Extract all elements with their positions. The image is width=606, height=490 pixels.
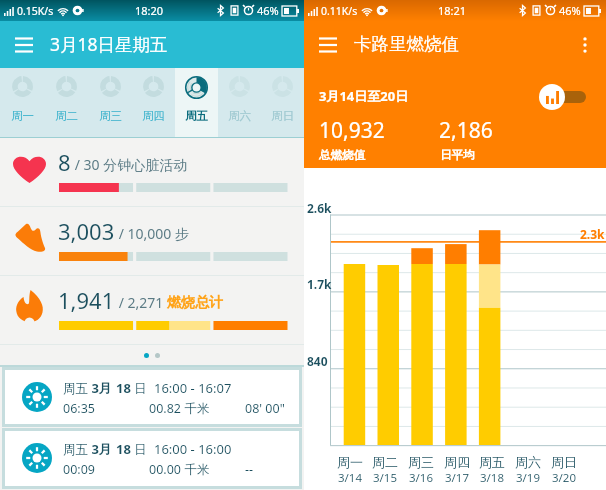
- staticText: 周一: [11, 109, 34, 123]
- staticText: --: [245, 461, 254, 478]
- staticText: 日平均: [440, 148, 475, 162]
- staticText: 46%: [257, 3, 279, 18]
- staticText: 16:00 - 16:00: [154, 440, 232, 458]
- staticText: 2,186: [439, 116, 493, 145]
- staticText: 周五: [185, 109, 208, 123]
- staticText: 1.7k: [307, 276, 332, 292]
- button[interactable]: 1,941: [0, 276, 304, 344]
- button[interactable]: 8: [0, 138, 304, 206]
- staticText: 周一: [337, 454, 363, 470]
- staticText: 00.82 千米: [149, 400, 210, 417]
- staticText: 3/14: [338, 470, 363, 486]
- staticText: / 2,271: [115, 293, 167, 312]
- staticText: 10,932: [319, 116, 385, 145]
- staticText: 18:20: [135, 3, 164, 18]
- staticText: 3月: [88, 379, 116, 397]
- button[interactable]: Menu: [9, 30, 39, 60]
- button[interactable]: 周六: [218, 68, 261, 138]
- staticText: 0.15K/s: [17, 4, 54, 18]
- staticText: 3月14日至20日: [319, 87, 409, 105]
- staticText: 周二: [55, 109, 78, 123]
- staticText: 日: [131, 380, 147, 397]
- staticText: 周日: [271, 109, 294, 123]
- staticText: 周二: [372, 454, 398, 470]
- button[interactable]: 周四: [132, 68, 175, 138]
- button[interactable]: 周五: [175, 68, 218, 138]
- staticText: 18: [116, 379, 131, 397]
- button[interactable]: 3,003: [0, 207, 304, 275]
- staticText: 46%: [559, 3, 581, 18]
- button[interactable]: 周二: [44, 68, 88, 138]
- staticText: 周三: [408, 454, 434, 470]
- staticText: 3/16: [409, 470, 434, 486]
- button[interactable]: 周五: [5, 370, 299, 424]
- staticText: 3月: [88, 440, 116, 458]
- staticText: / 30 分钟心脏活动: [71, 155, 188, 174]
- staticText: 周四: [142, 109, 165, 123]
- staticText: 总燃烧值: [319, 148, 365, 162]
- staticText: 3/18: [480, 470, 505, 486]
- staticText: 0.11K/s: [321, 4, 358, 18]
- staticText: 2.6k: [307, 200, 332, 216]
- button[interactable]: Menu: [313, 30, 343, 60]
- staticText: 3月18日星期五: [50, 32, 168, 56]
- staticText: 3/15: [373, 470, 398, 486]
- button[interactable]: 周日: [261, 68, 304, 138]
- staticText: 日: [131, 441, 147, 458]
- staticText: 840: [307, 353, 328, 369]
- staticText: 周六: [228, 109, 251, 123]
- staticText: 周五: [63, 442, 88, 458]
- staticText: 00:09: [63, 461, 95, 478]
- staticText: 8: [58, 147, 71, 177]
- button[interactable]: 周一: [0, 68, 44, 138]
- staticText: 08' 00": [245, 400, 285, 417]
- button[interactable]: 周三: [88, 68, 132, 138]
- staticText: 周五: [63, 381, 88, 397]
- staticText: 3/17: [445, 470, 470, 486]
- staticText: 3/19: [516, 470, 541, 486]
- staticText: 周四: [444, 454, 470, 470]
- staticText: 周三: [99, 109, 122, 123]
- staticText: 06:35: [63, 400, 95, 417]
- staticText: 卡路里燃烧值: [354, 33, 459, 55]
- button[interactable]: 周五: [5, 431, 299, 486]
- staticText: 3/20: [552, 470, 577, 486]
- staticText: 1,941: [58, 285, 115, 315]
- staticText: 2.3k: [580, 226, 605, 242]
- staticText: 周六: [515, 454, 541, 470]
- staticText: 3,003: [58, 216, 115, 246]
- staticText: 周日: [551, 454, 577, 470]
- staticText: 18: [116, 440, 131, 458]
- staticText: 00.00 千米: [149, 461, 210, 478]
- staticText: 18:21: [438, 3, 467, 18]
- staticText: 16:00 - 16:07: [154, 379, 232, 397]
- staticText: / 10,000 步: [115, 224, 189, 243]
- staticText: 周五: [479, 454, 505, 470]
- button[interactable]: More options: [570, 30, 600, 60]
- staticText: 燃烧总计: [167, 294, 223, 312]
- button[interactable]: Toggle chart view: [539, 84, 591, 110]
